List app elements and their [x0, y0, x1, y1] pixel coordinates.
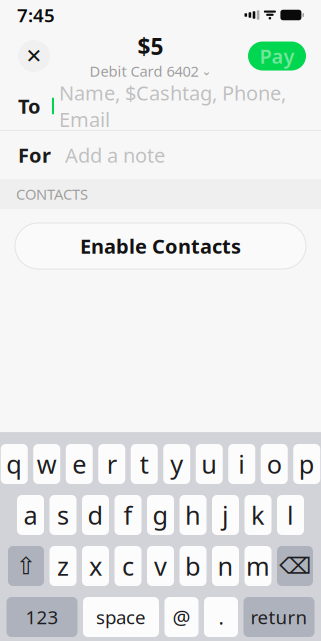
staticText: o — [267, 447, 282, 481]
button[interactable]: v — [147, 546, 174, 586]
staticText: k — [251, 498, 265, 532]
staticText: b — [185, 549, 201, 583]
button[interactable]: l — [277, 495, 304, 535]
button[interactable]: space — [83, 597, 159, 637]
button[interactable]: j — [212, 495, 239, 535]
button[interactable]: o — [261, 444, 288, 484]
staticText: ⌄ — [201, 64, 211, 78]
button[interactable]: n — [212, 546, 239, 586]
button[interactable]: 123 — [6, 597, 77, 637]
button[interactable]: Shift — [8, 546, 44, 586]
button[interactable]: w — [33, 444, 60, 484]
button[interactable]: z — [49, 546, 76, 586]
staticText: h — [185, 498, 201, 532]
button[interactable]: r — [98, 444, 125, 484]
staticText: u — [201, 447, 217, 481]
button[interactable]: k — [244, 495, 271, 535]
staticText: return — [250, 605, 307, 629]
staticText: r — [107, 447, 117, 481]
button[interactable]: To — [0, 82, 321, 130]
button[interactable]: Enable Contacts — [15, 223, 306, 269]
button[interactable]: x — [82, 546, 109, 586]
staticText: ✕ — [25, 45, 42, 67]
button[interactable]: m — [244, 546, 271, 586]
button[interactable]: s — [49, 495, 76, 535]
button[interactable]: Close — [15, 37, 53, 75]
staticText: To — [18, 93, 41, 119]
staticText: f — [123, 498, 132, 532]
button[interactable]: Delete — [277, 546, 313, 586]
staticText: w — [37, 447, 57, 481]
button[interactable]: return — [243, 597, 314, 637]
button[interactable]: Pay — [248, 41, 306, 70]
staticText: i — [238, 447, 245, 481]
button[interactable]: f — [114, 495, 141, 535]
button[interactable]: u — [196, 444, 223, 484]
button[interactable]: i — [228, 444, 255, 484]
button[interactable]: h — [179, 495, 206, 535]
staticText: Add a note — [65, 142, 165, 168]
staticText: s — [57, 498, 69, 532]
button[interactable]: d — [82, 495, 109, 535]
button[interactable]: y — [163, 444, 190, 484]
staticText: j — [222, 498, 229, 532]
button[interactable]: $5 — [89, 31, 211, 81]
staticText: Name, $Cashtag, Phone, Email — [59, 79, 286, 132]
staticText: m — [246, 549, 270, 583]
staticText: 7:45 — [17, 3, 55, 27]
button[interactable]: t — [131, 444, 158, 484]
staticText: z — [57, 549, 69, 583]
staticText: a — [23, 498, 37, 532]
button[interactable]: e — [66, 444, 93, 484]
button[interactable]: @ — [164, 597, 198, 637]
staticText: c — [122, 549, 134, 583]
staticText: x — [89, 549, 102, 583]
staticText: e — [72, 447, 86, 481]
staticText: space — [96, 605, 146, 629]
staticText: CONTACTS — [16, 184, 88, 204]
button[interactable]: For — [0, 131, 321, 179]
staticText: @ — [172, 604, 190, 630]
staticText: d — [87, 498, 103, 532]
staticText: Enable Contacts — [80, 233, 241, 259]
staticText: For — [18, 142, 51, 168]
staticText: p — [299, 447, 315, 481]
button[interactable]: a — [17, 495, 44, 535]
button[interactable]: p — [293, 444, 320, 484]
staticText: $5 — [137, 31, 163, 61]
button[interactable]: . — [204, 597, 238, 637]
button[interactable]: c — [114, 546, 141, 586]
button[interactable]: q — [1, 444, 28, 484]
staticText: t — [140, 447, 149, 481]
staticText: . — [218, 604, 223, 630]
staticText: Debit Card 6402 — [89, 61, 198, 81]
staticText: v — [154, 549, 167, 583]
staticText: g — [152, 498, 168, 532]
staticText: Pay — [259, 43, 294, 69]
staticText: ⌫ — [279, 553, 311, 579]
button[interactable]: g — [147, 495, 174, 535]
staticText: n — [217, 549, 233, 583]
staticText: ⇧ — [16, 552, 36, 580]
staticText: q — [6, 447, 22, 481]
staticText: y — [170, 447, 183, 481]
staticText: 123 — [25, 605, 58, 629]
staticText: l — [287, 498, 294, 532]
button[interactable]: b — [179, 546, 206, 586]
